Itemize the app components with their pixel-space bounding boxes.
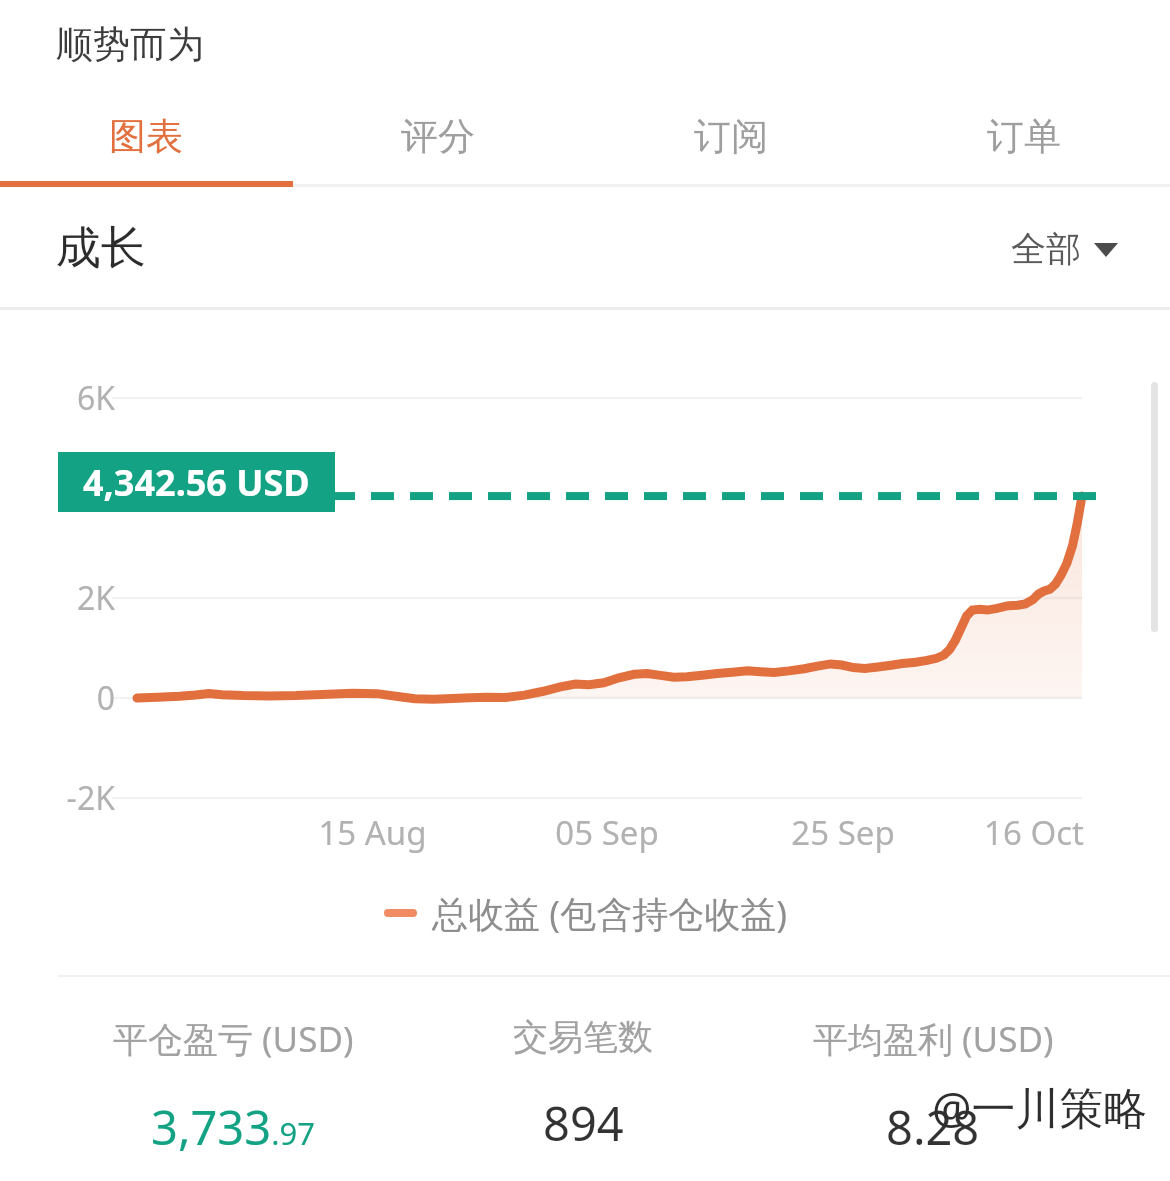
staticText: 8.28 xyxy=(886,1095,980,1159)
button[interactable]: 订单 xyxy=(877,88,1170,184)
button[interactable]: 交易笔数 xyxy=(408,977,758,1176)
staticText: 订阅 xyxy=(694,113,768,160)
staticText: 2K xyxy=(76,576,115,620)
staticText: 交易笔数 xyxy=(513,1015,653,1059)
staticText: 订单 xyxy=(987,113,1061,160)
staticText: 6K xyxy=(76,376,115,420)
button[interactable]: 评分 xyxy=(292,88,584,184)
staticText: 成长 xyxy=(56,220,146,277)
staticText: -2K xyxy=(66,776,115,820)
button[interactable]: 平均盈利 (USD) xyxy=(758,977,1108,1176)
staticText: 图表 xyxy=(109,113,183,160)
staticText: 评分 xyxy=(401,113,475,160)
staticText: 0 xyxy=(96,676,115,720)
staticText: 总收益 (包含持仓收益) xyxy=(432,889,787,938)
button[interactable]: 平仓盈亏 (USD) xyxy=(58,977,408,1176)
staticText: 3,733.97 xyxy=(151,1095,315,1159)
staticText: 平仓盈亏 (USD) xyxy=(113,1015,354,1063)
staticText: 15 Aug xyxy=(318,810,427,855)
button[interactable]: 4,342.56 USD xyxy=(58,452,335,512)
staticText: 全部 xyxy=(1011,227,1081,271)
button[interactable]: 订阅 xyxy=(584,88,877,184)
staticText: 05 Sep xyxy=(555,810,659,855)
staticText: 25 Sep xyxy=(791,810,895,855)
button[interactable]: 全部 xyxy=(1003,217,1126,281)
staticText: 894 xyxy=(543,1091,624,1155)
staticText: 平均盈利 (USD) xyxy=(813,1015,1054,1063)
button[interactable]: 图表 xyxy=(0,88,292,184)
staticText: @一川策略 xyxy=(932,1077,1148,1137)
staticText: 顺势而为 xyxy=(56,21,204,68)
staticText: 16 Oct xyxy=(984,810,1084,855)
other: Select range xyxy=(1094,241,1118,257)
staticText: 4,342.56 USD xyxy=(83,458,310,507)
